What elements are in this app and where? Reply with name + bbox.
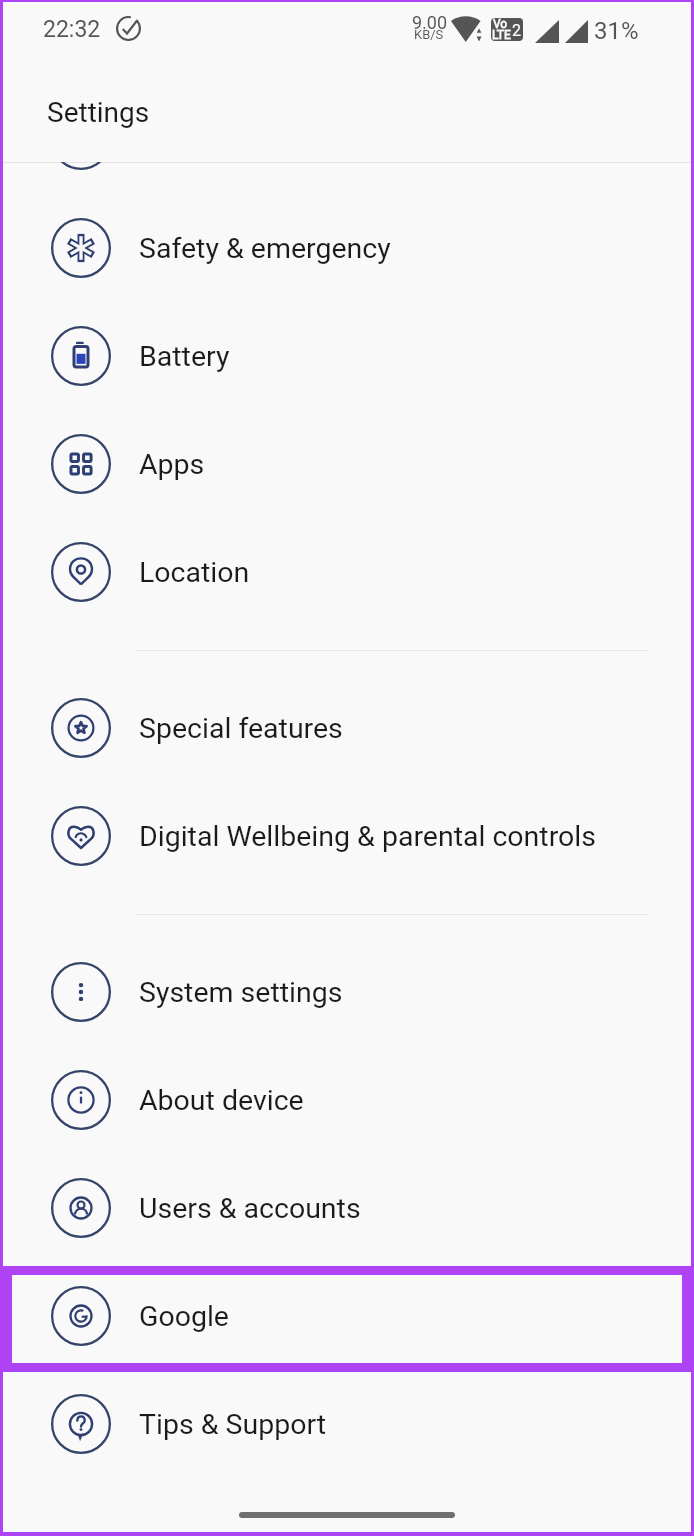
staticText: 2 [512,21,521,40]
staticText: Users & accounts [139,1192,361,1225]
staticText: Digital Wellbeing & parental controls [139,820,596,853]
staticText: Google [139,1300,229,1333]
staticText: Vo [493,18,508,31]
staticText: Special features [139,712,343,745]
staticText: LTE [492,28,511,41]
button[interactable]: System settings [3,938,691,1046]
staticText: 31% [594,17,639,45]
button[interactable]: Users & accounts [3,1154,691,1262]
staticText: 9.00 [412,12,448,33]
button[interactable]: Digital Wellbeing & parental controls [3,782,691,890]
button[interactable]: Special features [3,674,691,782]
button[interactable]: Apps [3,410,691,518]
staticText: Location [139,556,250,589]
button[interactable]: Tips & Support [3,1370,691,1478]
staticText: Apps [139,448,205,481]
staticText: Battery [139,340,230,373]
staticText: Safety & emergency [139,232,391,265]
staticText: About device [139,1084,304,1117]
staticText: Tips & Support [139,1408,327,1441]
staticText: 22:32 [43,16,101,43]
staticText: Settings [47,96,150,129]
button[interactable]: Google [3,1262,691,1370]
staticText: System settings [139,976,343,1009]
staticText: KB/S [414,27,444,42]
button[interactable]: About device [3,1046,691,1154]
button[interactable]: Location [3,518,691,626]
button[interactable]: Battery [3,302,691,410]
button[interactable]: Safety & emergency [3,194,691,302]
